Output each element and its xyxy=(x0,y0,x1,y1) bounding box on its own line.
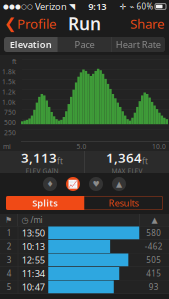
staticText: ●●●○○ xyxy=(3,3,33,10)
button[interactable]: Heart rate xyxy=(89,177,103,191)
staticText: 10:13 xyxy=(22,240,45,253)
staticText: 1.5k xyxy=(2,77,16,86)
staticText: ft xyxy=(57,156,63,166)
staticText: ♦ xyxy=(46,179,53,189)
button[interactable]: Splits xyxy=(6,196,84,210)
staticText: Pace xyxy=(74,38,94,51)
staticText: 2 xyxy=(7,241,12,252)
staticText: 5.0 xyxy=(76,142,86,151)
button[interactable]: 2 xyxy=(1,240,168,253)
staticText: Elevation xyxy=(10,38,52,51)
staticText: 11:34 xyxy=(22,267,45,280)
staticText: Results xyxy=(109,197,139,209)
staticText: Splits xyxy=(32,197,58,209)
staticText: 580 xyxy=(146,228,161,238)
staticText: 3 xyxy=(7,255,12,265)
staticText: 1.0k xyxy=(2,98,16,107)
staticText: 9:13 xyxy=(88,0,106,13)
button[interactable]: Elevation chart xyxy=(66,177,80,191)
staticText: 415 xyxy=(146,268,161,279)
staticText: 10.0 xyxy=(152,142,166,151)
staticText: 📈 xyxy=(68,179,78,188)
staticText: ❮ xyxy=(4,15,16,32)
staticText: 4 xyxy=(7,268,12,279)
staticText: ▲ xyxy=(151,215,157,225)
staticText: ft xyxy=(12,57,16,66)
staticText: Profile xyxy=(17,15,57,32)
staticText: ▲ xyxy=(116,179,122,189)
button[interactable]: 5 xyxy=(1,280,168,293)
staticText: ◥ xyxy=(69,2,75,11)
staticText: 250 xyxy=(4,128,16,137)
button[interactable]: 4 xyxy=(1,267,168,280)
button[interactable]: Map xyxy=(43,177,57,191)
button[interactable]: 1 xyxy=(1,226,168,239)
staticText: 750 xyxy=(4,108,16,117)
staticText: Run xyxy=(68,12,101,35)
button[interactable]: 3 xyxy=(1,253,168,266)
staticText: MAX ELEV xyxy=(111,166,142,175)
staticText: 500 xyxy=(4,118,16,127)
button[interactable]: Share xyxy=(126,12,169,35)
button[interactable]: Results xyxy=(84,196,163,210)
button[interactable]: Pace xyxy=(58,37,111,52)
staticText: 1.8k xyxy=(2,67,16,76)
staticText: 13:50 xyxy=(22,227,45,239)
button[interactable]: ❮ xyxy=(0,12,61,35)
staticText: ✛ ⌁ 60% xyxy=(119,1,153,12)
staticText: ELEV GAIN xyxy=(25,166,58,175)
staticText: 5 xyxy=(7,282,12,292)
staticText: ◷ /mi xyxy=(21,215,42,225)
staticText: Heart Rate xyxy=(116,38,161,51)
staticText: 505 xyxy=(146,255,161,265)
button[interactable]: Elevation xyxy=(4,37,57,52)
staticText: 1,364 xyxy=(106,149,142,166)
staticText: 10:47 xyxy=(22,281,45,293)
staticText: ⚑ xyxy=(5,215,12,225)
button[interactable]: Heart Rate xyxy=(112,37,165,52)
staticText: mi xyxy=(3,142,11,151)
staticText: Verizon xyxy=(33,0,69,13)
staticText: 1 xyxy=(7,228,12,238)
staticText: ♥ xyxy=(92,179,99,189)
staticText: 3,113 xyxy=(21,149,57,166)
staticText: 93 xyxy=(149,282,159,292)
staticText: -462 xyxy=(145,241,163,252)
staticText: ft xyxy=(142,156,148,166)
staticText: 1.2k xyxy=(2,87,16,96)
button[interactable]: Splits xyxy=(112,177,126,191)
staticText: 12:55 xyxy=(22,254,45,266)
staticText: Share xyxy=(130,15,165,32)
